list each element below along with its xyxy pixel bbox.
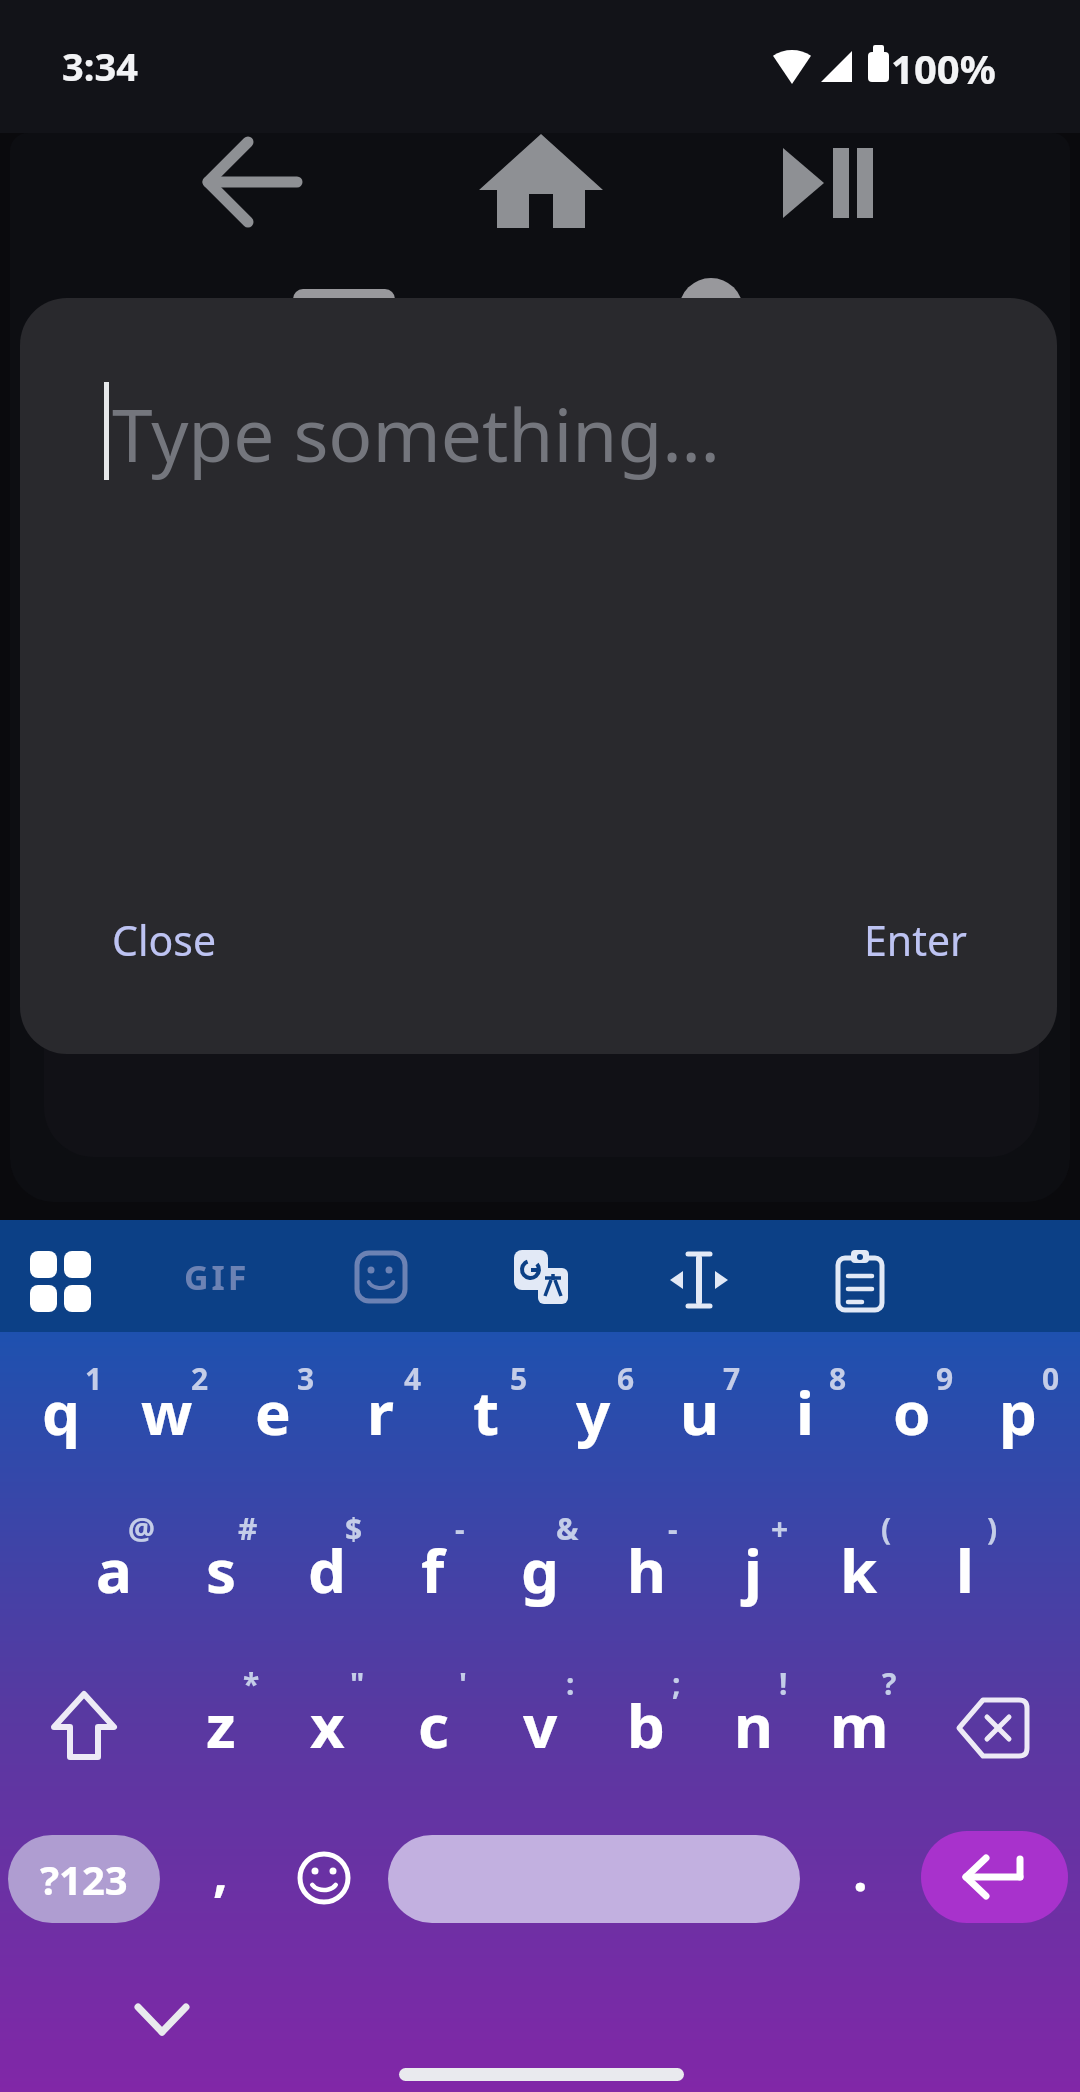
- staticText: x: [310, 1684, 345, 1766]
- staticText: q: [42, 1371, 80, 1453]
- staticText: @: [128, 1508, 155, 1548]
- button[interactable]: [500, 1240, 580, 1320]
- staticText: 1: [85, 1358, 103, 1398]
- button[interactable]: [290, 1835, 360, 1923]
- staticText: e: [255, 1371, 291, 1453]
- staticText: .: [853, 1835, 868, 1906]
- staticText: 100%: [891, 41, 996, 91]
- staticText: 7: [723, 1358, 741, 1398]
- staticText: y: [576, 1371, 611, 1453]
- staticText: *: [243, 1663, 260, 1703]
- staticText: 3: [297, 1358, 315, 1398]
- staticText: l: [956, 1529, 974, 1611]
- button[interactable]: v: [486, 1659, 594, 1791]
- button[interactable]: [20, 1240, 100, 1320]
- button[interactable]: m: [805, 1659, 913, 1791]
- staticText: 3:34: [62, 40, 138, 90]
- staticText: 6: [617, 1358, 635, 1398]
- button[interactable]: w: [113, 1346, 221, 1478]
- staticText: 5: [510, 1358, 528, 1398]
- staticText: ": [350, 1663, 365, 1703]
- staticText: h: [627, 1529, 666, 1611]
- staticText: -: [455, 1508, 465, 1548]
- staticText: t: [473, 1371, 500, 1453]
- staticText: s: [206, 1529, 237, 1611]
- staticText: #: [238, 1508, 258, 1548]
- staticText: $: [345, 1508, 363, 1548]
- staticText: 0: [1042, 1358, 1060, 1398]
- staticText: ): [987, 1508, 998, 1548]
- staticText: :: [566, 1663, 575, 1703]
- button[interactable]: [921, 1831, 1068, 1923]
- button[interactable]: [388, 1835, 800, 1923]
- button[interactable]: Enter: [850, 910, 980, 970]
- staticText: Close: [112, 912, 217, 968]
- button[interactable]: n: [699, 1659, 807, 1791]
- button[interactable]: [660, 1240, 740, 1320]
- button[interactable]: r: [326, 1346, 434, 1478]
- staticText: c: [418, 1684, 449, 1766]
- staticText: m: [830, 1684, 889, 1766]
- button[interactable]: [340, 1240, 420, 1320]
- button[interactable]: o: [858, 1346, 966, 1478]
- staticText: 9: [936, 1358, 954, 1398]
- staticText: o: [893, 1371, 931, 1453]
- button[interactable]: c: [379, 1659, 487, 1791]
- staticText: p: [999, 1371, 1037, 1453]
- staticText: ?: [882, 1663, 897, 1703]
- staticText: Type something…: [112, 384, 721, 480]
- staticText: Enter: [864, 912, 967, 968]
- staticText: g: [521, 1529, 559, 1611]
- button[interactable]: [818, 1240, 898, 1320]
- staticText: d: [308, 1529, 346, 1611]
- button[interactable]: ,: [190, 1820, 250, 1920]
- button[interactable]: y: [539, 1346, 647, 1478]
- staticText: (: [881, 1508, 892, 1548]
- staticText: ?123: [40, 1852, 128, 1906]
- staticText: !: [779, 1663, 788, 1703]
- button[interactable]: GIF: [172, 1244, 262, 1310]
- staticText: u: [680, 1371, 719, 1453]
- button[interactable]: h: [592, 1504, 700, 1636]
- staticText: ,: [213, 1835, 228, 1906]
- staticText: a: [96, 1529, 132, 1611]
- staticText: 8: [829, 1358, 847, 1398]
- button[interactable]: l: [911, 1504, 1019, 1636]
- staticText: z: [206, 1684, 236, 1766]
- button[interactable]: b: [592, 1659, 700, 1791]
- staticText: w: [141, 1371, 193, 1453]
- button[interactable]: x: [273, 1659, 381, 1791]
- staticText: k: [840, 1529, 878, 1611]
- button[interactable]: i: [751, 1346, 859, 1478]
- button[interactable]: k: [805, 1504, 913, 1636]
- button[interactable]: f: [379, 1504, 487, 1636]
- button[interactable]: .: [830, 1820, 890, 1920]
- staticText: GIF: [184, 1254, 250, 1300]
- staticText: -: [668, 1508, 678, 1548]
- button[interactable]: j: [699, 1504, 807, 1636]
- button[interactable]: s: [167, 1504, 275, 1636]
- button[interactable]: p: [964, 1346, 1072, 1478]
- button[interactable]: ?123: [8, 1835, 160, 1923]
- staticText: j: [744, 1529, 762, 1611]
- button[interactable]: a: [60, 1504, 168, 1636]
- staticText: ': [459, 1663, 467, 1703]
- button[interactable]: q: [7, 1346, 115, 1478]
- button[interactable]: z: [167, 1659, 275, 1791]
- button[interactable]: e: [219, 1346, 327, 1478]
- staticText: 2: [191, 1358, 209, 1398]
- staticText: 4: [404, 1358, 422, 1398]
- button[interactable]: [30, 1670, 140, 1780]
- staticText: n: [734, 1684, 773, 1766]
- staticText: +: [771, 1508, 789, 1548]
- staticText: r: [367, 1371, 394, 1453]
- button[interactable]: g: [486, 1504, 594, 1636]
- button[interactable]: Close: [94, 910, 234, 970]
- button[interactable]: d: [273, 1504, 381, 1636]
- button[interactable]: t: [432, 1346, 540, 1478]
- staticText: &: [556, 1508, 579, 1548]
- button[interactable]: [940, 1670, 1050, 1780]
- button[interactable]: u: [645, 1346, 753, 1478]
- staticText: f: [421, 1529, 445, 1611]
- staticText: b: [627, 1684, 665, 1766]
